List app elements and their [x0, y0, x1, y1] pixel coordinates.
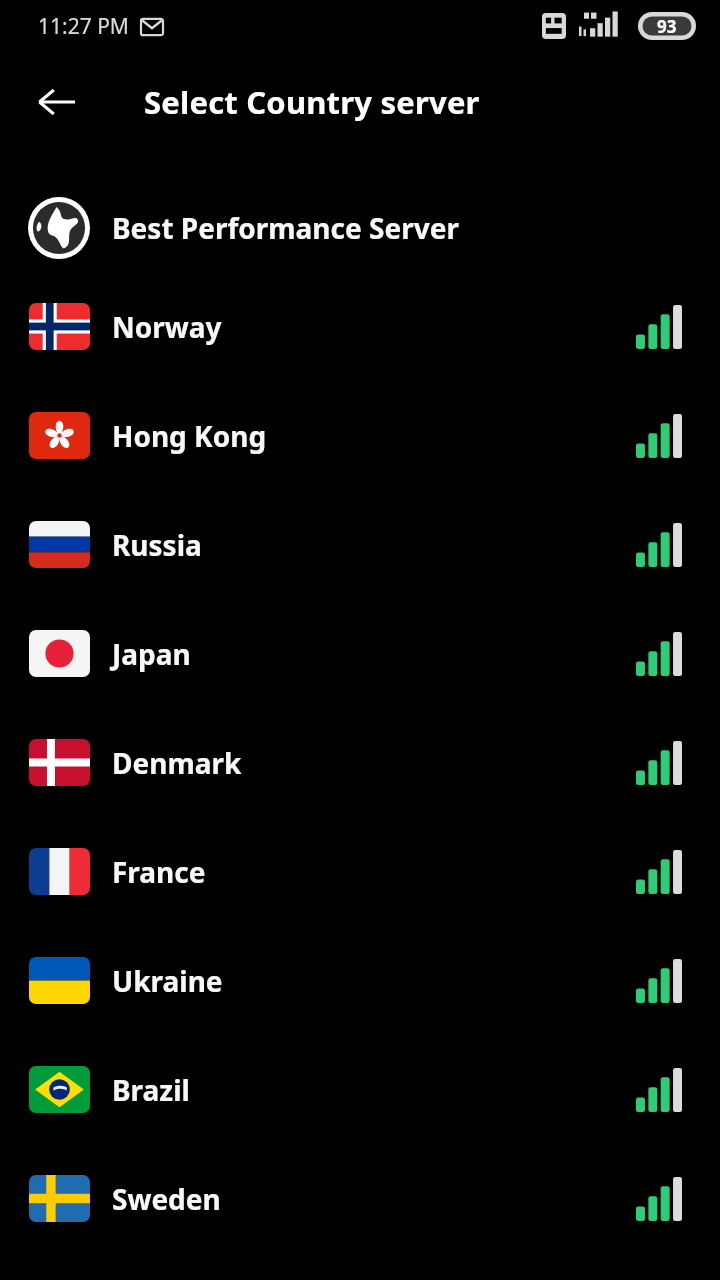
staticText: Norway	[112, 308, 222, 346]
button[interactable]: Brazil	[0, 1035, 720, 1144]
button[interactable]: Ukraine	[0, 926, 720, 1035]
button[interactable]: Denmark	[0, 708, 720, 817]
staticText: Russia	[112, 526, 202, 564]
button[interactable]: Russia	[0, 490, 720, 599]
button[interactable]: Japan	[0, 599, 720, 708]
staticText: Sweden	[112, 1180, 221, 1218]
staticText: Denmark	[112, 744, 242, 782]
staticText: Ukraine	[112, 962, 223, 1000]
staticText: Hong Kong	[112, 417, 267, 455]
button[interactable]: Sweden	[0, 1144, 720, 1253]
staticText: Japan	[112, 635, 191, 673]
button[interactable]: France	[0, 817, 720, 926]
button[interactable]: Norway	[0, 272, 720, 381]
staticText: Select Country server	[144, 81, 480, 123]
button[interactable]: Hong Kong	[0, 381, 720, 490]
staticText: 93	[657, 15, 677, 38]
button[interactable]: Best Performance Server	[0, 184, 720, 272]
staticText: Best Performance Server	[112, 209, 459, 247]
button[interactable]: Back	[28, 73, 86, 131]
staticText: France	[112, 853, 206, 891]
staticText: 11:27 PM	[38, 12, 129, 41]
staticText: Brazil	[112, 1071, 190, 1109]
